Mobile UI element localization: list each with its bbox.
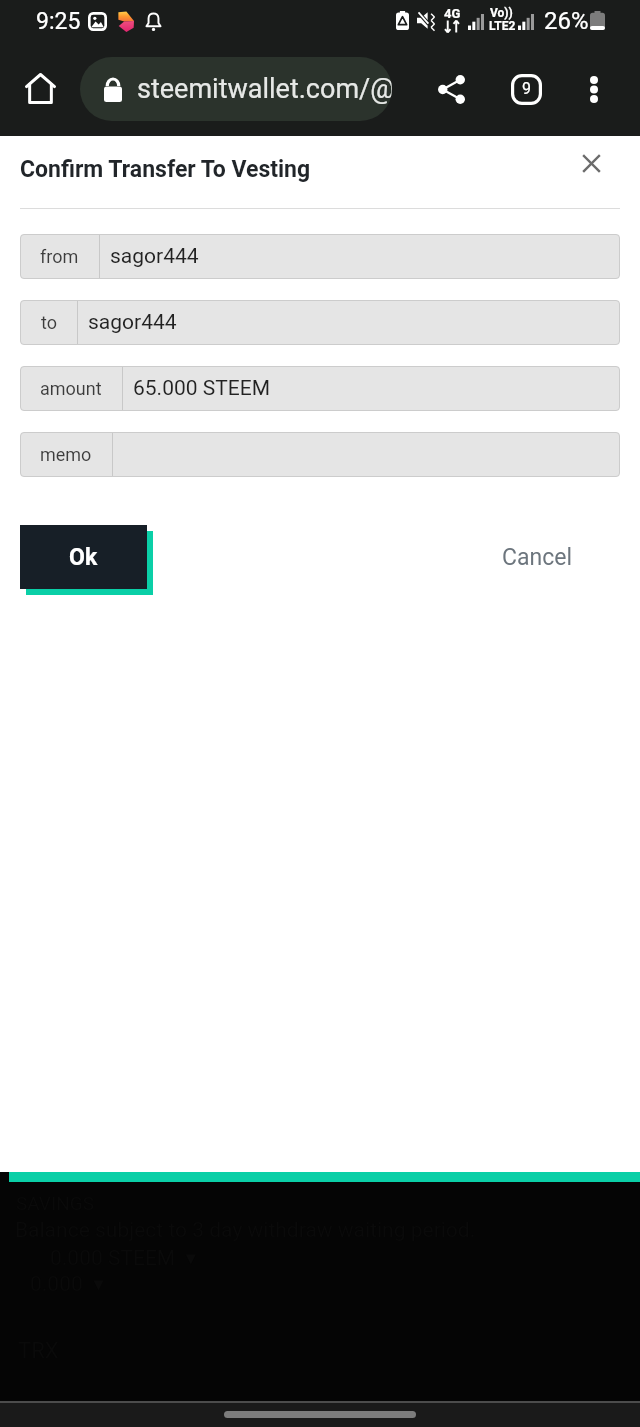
staticText: from	[40, 246, 79, 267]
staticText: amount	[40, 378, 102, 399]
staticText: LTE2	[489, 19, 516, 33]
staticText: sagor444	[88, 310, 177, 335]
staticText: memo	[40, 444, 92, 465]
button[interactable]: More options	[571, 67, 616, 112]
staticText: 26%	[544, 7, 589, 35]
button[interactable]: from	[20, 234, 620, 279]
button[interactable]: Ok	[20, 525, 147, 589]
button[interactable]: Tabs	[504, 67, 549, 112]
staticText: Confirm Transfer To Vesting	[20, 156, 311, 183]
staticText: Cancel	[502, 544, 573, 571]
staticText: to	[41, 312, 57, 333]
button[interactable]: Close	[569, 141, 613, 185]
button[interactable]: Share	[429, 67, 474, 112]
button[interactable]: Home	[18, 66, 63, 111]
button[interactable]: Cancel	[480, 531, 594, 583]
staticText: 9	[522, 79, 531, 98]
staticText: 9:25	[36, 8, 81, 35]
button[interactable]: memo	[20, 432, 620, 477]
staticText: sagor444	[110, 244, 199, 269]
staticText: steemitwallet.com/@sagor444	[137, 73, 392, 105]
staticText: Vo))	[490, 6, 513, 20]
staticText: 65.000 STEEM	[133, 376, 270, 401]
staticText: Ok	[69, 544, 98, 571]
button[interactable]: to	[20, 300, 620, 345]
button[interactable]: steemitwallet.com/@sagor444	[80, 57, 392, 121]
button[interactable]: amount	[20, 366, 620, 411]
staticText: 4G	[444, 6, 461, 21]
